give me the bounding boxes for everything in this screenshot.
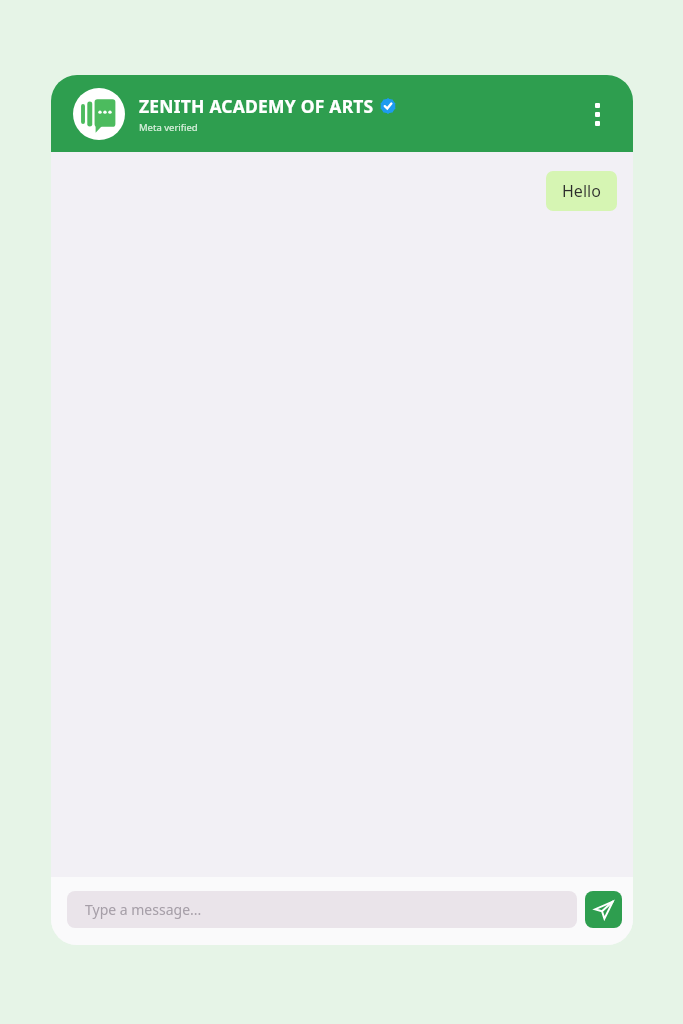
staticText: Type a message... <box>85 900 202 919</box>
staticText: Meta verified <box>139 121 198 134</box>
button[interactable]: Send <box>585 891 622 928</box>
staticText: Hello <box>562 180 601 202</box>
button[interactable]: More options <box>575 92 619 136</box>
button[interactable]: Type a message... <box>67 891 577 928</box>
button[interactable]: Hello <box>546 171 617 211</box>
staticText: ZENITH ACADEMY OF ARTS <box>139 94 374 118</box>
button[interactable]: Profile photo <box>73 88 125 140</box>
